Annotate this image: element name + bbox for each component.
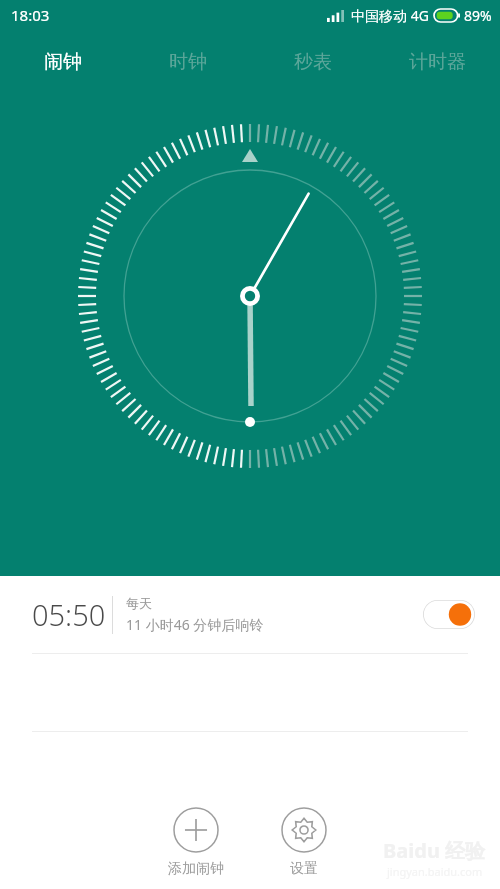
staticText: 设置 xyxy=(266,860,342,878)
staticText: 11 小时46 分钟后响铃 xyxy=(126,615,264,634)
button[interactable]: 闹钟 xyxy=(0,42,125,82)
staticText: 闹钟 xyxy=(44,50,82,74)
button[interactable]: Add alarm xyxy=(158,807,234,878)
staticText: Baidu 经验 xyxy=(383,837,486,864)
staticText: 18:03 xyxy=(11,5,50,25)
staticText: 计时器 xyxy=(409,50,466,74)
staticText: jingyan.baidu.com xyxy=(387,864,483,879)
staticText: 秒表 xyxy=(294,50,332,74)
button[interactable]: 秒表 xyxy=(250,42,375,82)
button[interactable]: Toggle alarm xyxy=(423,600,475,629)
staticText: 05:50 xyxy=(32,595,106,634)
staticText: 中国移动 4G xyxy=(351,6,429,25)
button[interactable]: 计时器 xyxy=(375,42,500,82)
staticText: 每天 xyxy=(126,595,152,611)
button[interactable]: 时钟 xyxy=(125,42,250,82)
button[interactable]: 05:50 xyxy=(0,576,500,653)
button[interactable]: Settings xyxy=(266,807,342,878)
staticText: 89% xyxy=(464,6,492,25)
staticText: 添加闹钟 xyxy=(158,860,234,878)
staticText: 时钟 xyxy=(169,50,207,74)
